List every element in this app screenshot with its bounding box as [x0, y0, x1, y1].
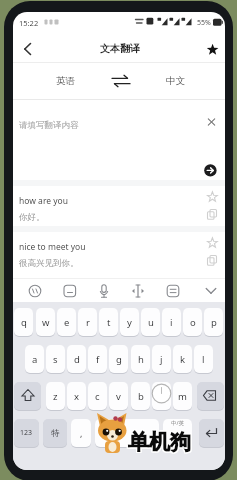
button[interactable]	[14, 382, 41, 410]
button[interactable]: w	[36, 308, 55, 336]
staticText: 单机狗	[129, 430, 192, 456]
button[interactable]: 123	[14, 419, 39, 447]
button[interactable]: u	[141, 308, 160, 336]
button[interactable]	[17, 39, 39, 59]
button[interactable]: h	[131, 345, 150, 373]
button[interactable]	[199, 419, 224, 447]
button[interactable]: g	[109, 345, 128, 373]
staticText: a	[32, 353, 38, 366]
button[interactable]	[164, 282, 182, 300]
button[interactable]	[163, 419, 192, 447]
staticText: 单机狗	[128, 430, 191, 456]
staticText: j	[160, 353, 163, 366]
button[interactable]	[202, 282, 220, 300]
button[interactable]	[95, 282, 113, 300]
button[interactable]	[95, 419, 159, 447]
button[interactable]: r	[78, 308, 97, 336]
staticText: r	[86, 316, 90, 329]
button[interactable]: n	[152, 382, 171, 410]
staticText: 特	[51, 428, 60, 439]
staticText: s	[53, 353, 58, 366]
button[interactable]	[197, 382, 224, 410]
button[interactable]: 特	[43, 419, 67, 447]
button[interactable]	[13, 186, 225, 226]
staticText: n	[159, 390, 165, 403]
staticText: 文本翻译	[100, 42, 140, 55]
staticText: z	[53, 390, 58, 403]
button[interactable]: z	[46, 382, 65, 410]
button[interactable]: e	[57, 308, 76, 336]
staticText: l	[202, 353, 205, 366]
staticText: i	[170, 316, 173, 329]
staticText: t	[107, 316, 111, 329]
button[interactable]: k	[173, 345, 192, 373]
staticText: w	[42, 316, 50, 329]
staticText: d	[74, 353, 80, 366]
button[interactable]: b	[131, 382, 150, 410]
button[interactable]: t	[99, 308, 118, 336]
staticText: 单机狗	[128, 428, 191, 454]
staticText: 中/英	[171, 419, 185, 427]
button[interactable]: q	[14, 308, 33, 336]
staticText: x	[74, 390, 80, 403]
button[interactable]	[202, 39, 224, 59]
button[interactable]: j	[152, 345, 171, 373]
staticText: 单机狗	[127, 429, 190, 455]
staticText: k	[180, 353, 186, 366]
button[interactable]	[129, 282, 147, 300]
staticText: ,	[80, 427, 83, 439]
button[interactable]: v	[109, 382, 128, 410]
button[interactable]: o	[183, 308, 202, 336]
staticText: c	[95, 390, 100, 403]
staticText: 英语	[56, 75, 75, 87]
button[interactable]: a	[25, 345, 44, 373]
staticText: 123	[20, 428, 33, 438]
button[interactable]: f	[88, 345, 107, 373]
staticText: 55%	[197, 18, 211, 28]
staticText: 单机狗	[129, 428, 192, 454]
button[interactable]: i	[162, 308, 181, 336]
button[interactable]	[105, 72, 136, 90]
staticText: o	[190, 316, 196, 329]
button[interactable]: d	[67, 345, 86, 373]
button[interactable]: y	[120, 308, 139, 336]
staticText: v	[116, 390, 121, 403]
button[interactable]	[203, 163, 218, 178]
staticText: 15:22	[19, 18, 39, 28]
button[interactable]	[203, 113, 220, 130]
staticText: u	[148, 316, 154, 329]
staticText: 单机狗	[129, 429, 192, 455]
button[interactable]	[26, 282, 44, 300]
staticText: p	[211, 316, 217, 329]
button[interactable]: m	[173, 382, 192, 410]
staticText: 单机狗	[128, 429, 191, 455]
staticText: how are you	[19, 195, 68, 207]
staticText: b	[138, 390, 144, 403]
button[interactable]: p	[204, 308, 223, 336]
staticText: nice to meet you	[19, 241, 86, 253]
staticText: q	[21, 316, 27, 329]
staticText: 单机狗	[127, 428, 190, 454]
button[interactable]: x	[67, 382, 86, 410]
staticText: 单机狗	[127, 430, 190, 456]
staticText: 你好。	[19, 212, 45, 223]
button[interactable]: c	[88, 382, 107, 410]
staticText: g	[116, 353, 122, 366]
staticText: y	[127, 316, 132, 329]
staticText: m	[178, 390, 187, 403]
button[interactable]	[13, 232, 225, 272]
button[interactable]: ,	[71, 419, 91, 447]
staticText: 很高兴见到你。	[19, 258, 79, 269]
button[interactable]: s	[46, 345, 65, 373]
staticText: h	[138, 353, 144, 366]
button[interactable]	[61, 282, 79, 300]
staticText: 请填写翻译内容	[19, 120, 79, 131]
staticText: f	[96, 353, 100, 366]
staticText: 中文	[166, 75, 185, 87]
staticText: e	[64, 316, 70, 329]
button[interactable]: l	[194, 345, 213, 373]
